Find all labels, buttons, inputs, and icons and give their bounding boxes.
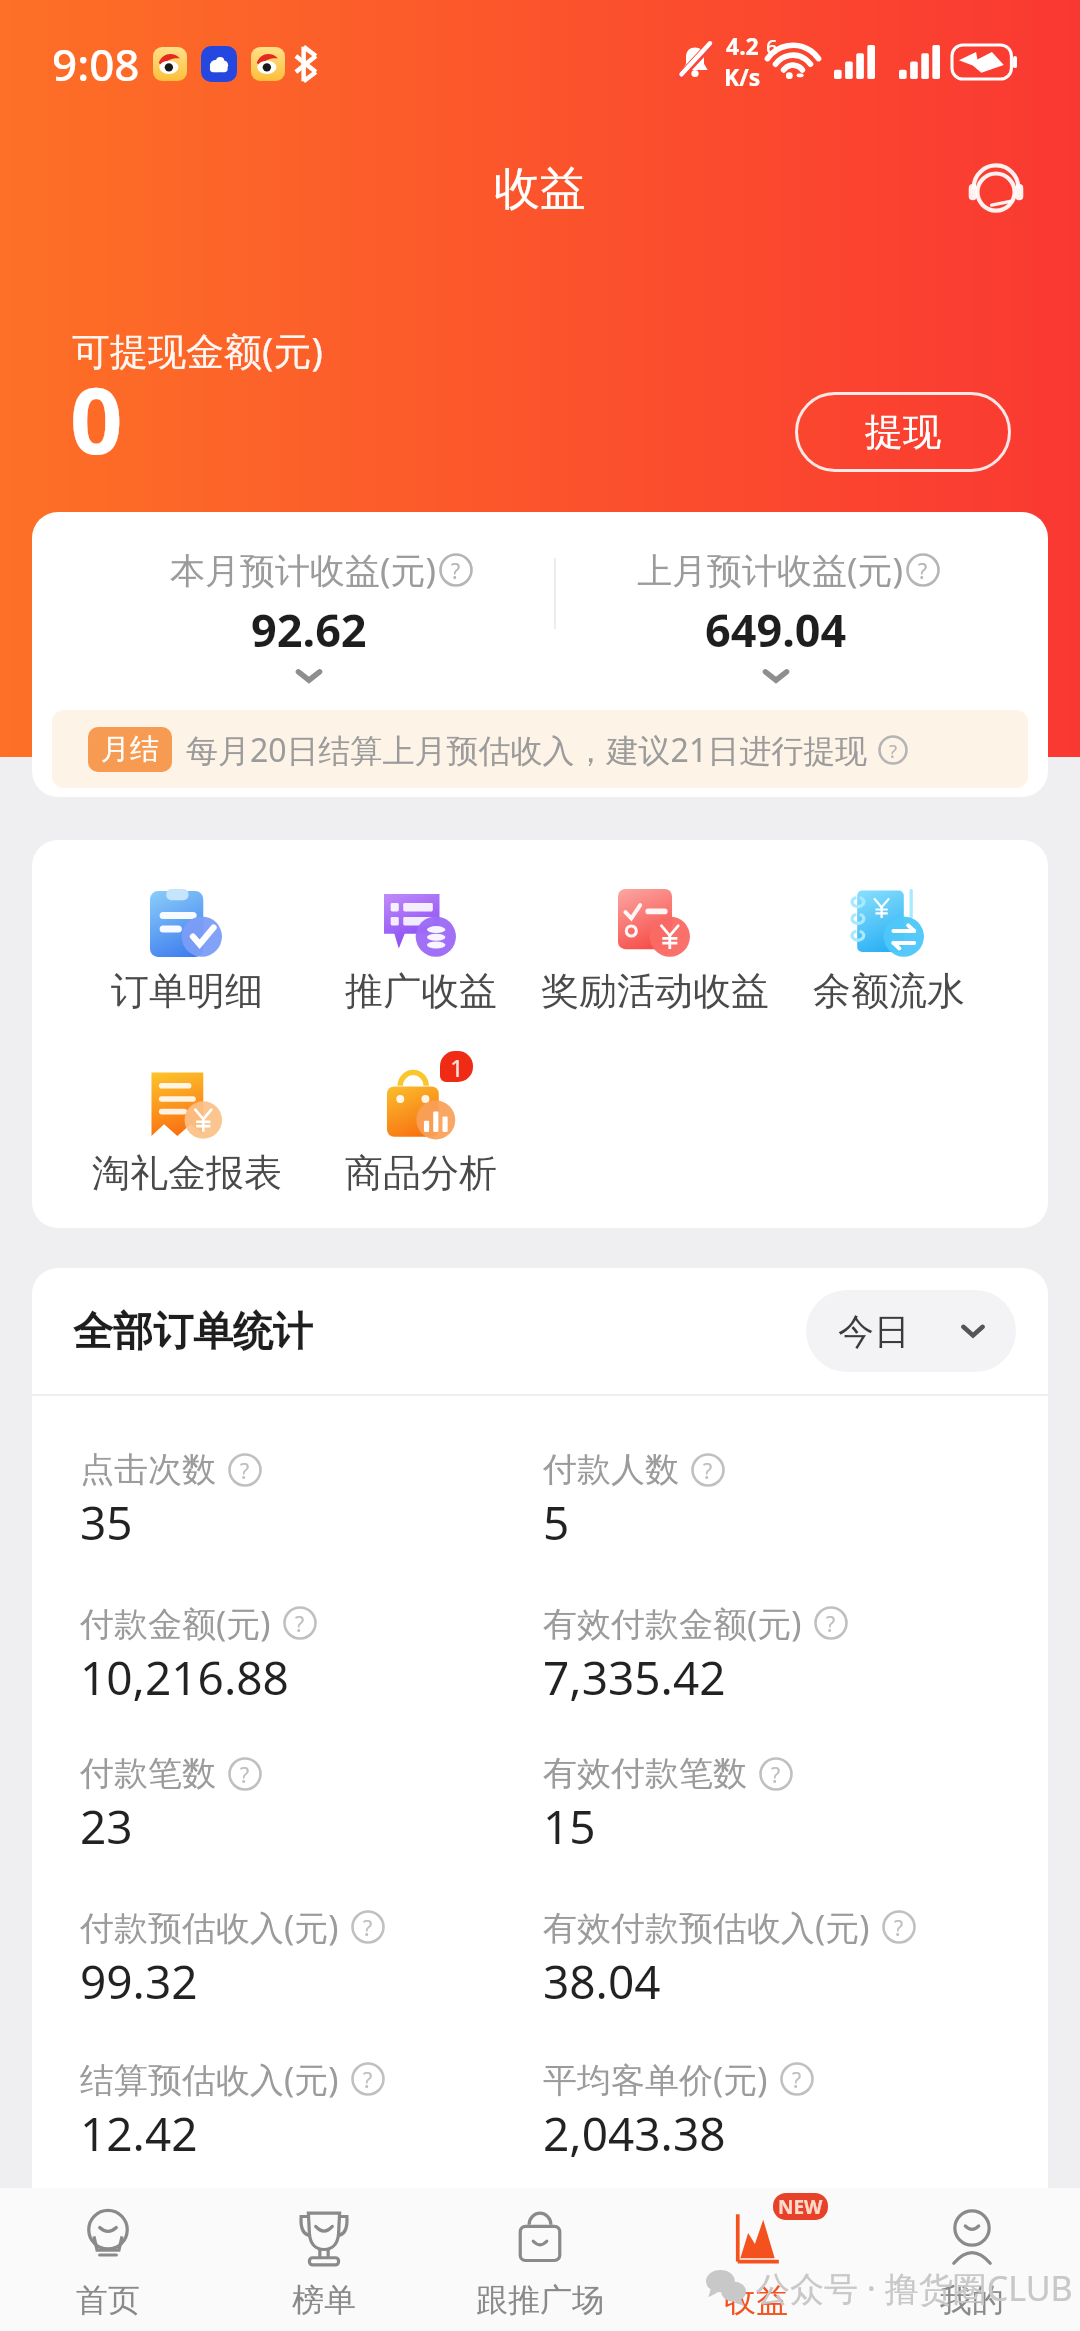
button[interactable]: 首页: [0, 2188, 216, 2331]
button[interactable]: 提现: [795, 392, 1011, 472]
staticText: 提现: [865, 408, 941, 456]
staticText: 有效付款预估收入(元): [543, 1904, 870, 1950]
staticText: ?: [703, 1456, 713, 1485]
button[interactable]: 我的: [864, 2188, 1080, 2331]
button[interactable]: NEW: [648, 2188, 864, 2331]
staticText: 92.62: [251, 599, 367, 660]
button[interactable]: Customer service: [954, 147, 1038, 231]
staticText: 首页: [76, 2280, 140, 2320]
staticText: 35: [80, 1491, 133, 1554]
staticText: 每月20日结算上月预估收入，建议21日进行提现: [186, 728, 868, 772]
staticText: ?: [792, 2065, 802, 2094]
staticText: 公众号 · 撸货圈CLUB: [756, 2265, 1073, 2311]
staticText: 649.04: [705, 599, 847, 660]
staticText: 5: [543, 1491, 570, 1554]
staticText: 可提现金额(元): [72, 324, 323, 376]
staticText: 付款金额(元): [80, 1600, 271, 1646]
staticText: 上月预计收益(元): [637, 546, 904, 594]
staticText: 淘礼金报表: [92, 1149, 282, 1197]
staticText: 0: [70, 356, 123, 481]
staticText: ?: [363, 1913, 373, 1942]
button[interactable]: 订单明细: [70, 889, 304, 1015]
staticText: ?: [363, 2065, 373, 2094]
staticText: 有效付款金额(元): [543, 1600, 802, 1646]
staticText: NEW: [778, 2194, 823, 2220]
staticText: 99.32: [80, 1950, 198, 2013]
button[interactable]: 榜单: [216, 2188, 432, 2331]
staticText: 月结: [101, 731, 159, 768]
staticText: 结算预估收入(元): [80, 2056, 339, 2102]
staticText: 推广收益: [345, 967, 497, 1015]
staticText: 榜单: [292, 2280, 356, 2320]
staticText: 收益: [724, 2280, 788, 2320]
staticText: 商品分析: [345, 1149, 497, 1197]
staticText: 7,335.42: [543, 1646, 726, 1709]
button[interactable]: 1: [304, 1071, 538, 1197]
staticText: ?: [826, 1609, 836, 1638]
staticText: 今日: [838, 1309, 910, 1354]
staticText: 奖励活动收益: [541, 967, 769, 1015]
button[interactable]: 推广收益: [304, 889, 538, 1015]
staticText: 我的: [940, 2280, 1004, 2320]
staticText: 1: [450, 1051, 464, 1082]
staticText: 跟推广场: [476, 2280, 604, 2320]
staticText: 12.42: [80, 2102, 198, 2165]
staticText: 15: [543, 1795, 596, 1858]
staticText: 余额流水: [813, 967, 965, 1015]
staticText: ?: [889, 738, 898, 763]
staticText: 2,043.38: [543, 2102, 726, 2165]
staticText: 38.04: [543, 1950, 661, 2013]
staticText: 全部订单统计: [73, 1306, 313, 1356]
staticText: 付款笔数: [80, 1752, 216, 1795]
staticText: 有效付款笔数: [543, 1752, 747, 1795]
button[interactable]: 跟推广场: [432, 2188, 648, 2331]
staticText: 4.2: [726, 30, 759, 61]
staticText: ?: [894, 1913, 904, 1942]
staticText: ?: [295, 1609, 305, 1638]
staticText: 平均客单价(元): [543, 2056, 768, 2102]
staticText: 收益: [494, 160, 586, 218]
staticText: K/s: [724, 61, 761, 92]
staticText: 订单明细: [111, 967, 263, 1015]
staticText: 9:08: [52, 34, 140, 94]
staticText: 付款预估收入(元): [80, 1904, 339, 1950]
staticText: ?: [451, 556, 461, 585]
staticText: ?: [918, 556, 928, 585]
button[interactable]: 今日: [806, 1290, 1016, 1372]
staticText: ?: [771, 1760, 781, 1789]
button[interactable]: 淘礼金报表: [70, 1071, 304, 1197]
staticText: 付款人数: [543, 1448, 679, 1491]
staticText: 23: [80, 1795, 133, 1858]
staticText: 10,216.88: [80, 1646, 289, 1709]
staticText: 点击次数: [80, 1448, 216, 1491]
button[interactable]: 余额流水: [772, 889, 1006, 1015]
staticText: 本月预计收益(元): [170, 546, 437, 594]
button[interactable]: 奖励活动收益: [538, 889, 772, 1015]
staticText: ?: [240, 1760, 250, 1789]
staticText: ?: [240, 1456, 250, 1485]
staticText: 6: [766, 33, 778, 60]
